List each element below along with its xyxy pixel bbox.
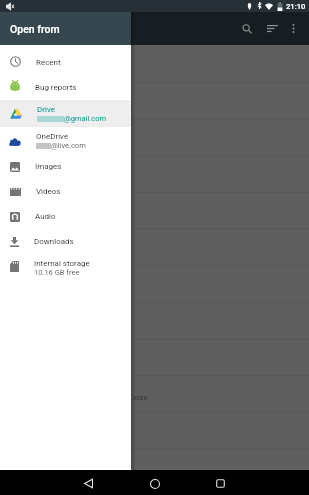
staticText: Images: [35, 162, 62, 171]
button[interactable]: Recent: [0, 50, 131, 75]
button[interactable]: Drive: [0, 100, 131, 127]
button[interactable]: Search: [233, 15, 260, 42]
button[interactable]: Back: [68, 470, 108, 495]
staticText: Bug reports: [35, 83, 77, 92]
staticText: Recent: [36, 58, 61, 67]
staticText: OneDrive: [36, 132, 69, 141]
button[interactable]: Videos: [0, 179, 131, 204]
staticText: Videos: [36, 187, 61, 196]
button[interactable]: OneDrive: [0, 127, 131, 154]
staticText: Internal storage: [34, 259, 90, 268]
staticText: Open from: [10, 23, 60, 35]
button[interactable]: Images: [0, 154, 131, 179]
staticText: Budget.xlsx: [106, 393, 148, 402]
button[interactable]: More options: [280, 15, 307, 42]
staticText: Downloads: [34, 237, 74, 246]
button[interactable]: Downloads: [0, 229, 131, 254]
staticText: Audio: [35, 212, 56, 221]
button[interactable]: Bug reports: [0, 75, 131, 100]
staticText: 10.16 GB free: [34, 268, 80, 277]
button[interactable]: Sort: [259, 15, 286, 42]
staticText: @gmail.com: [64, 114, 107, 123]
staticText: 21:10: [286, 2, 306, 11]
staticText: Drive: [37, 105, 55, 114]
button[interactable]: Audio: [0, 204, 131, 229]
button[interactable]: Recents: [200, 470, 240, 495]
button[interactable]: Home: [135, 470, 175, 495]
button[interactable]: Internal storage: [0, 254, 131, 281]
staticText: @live.com: [51, 141, 86, 150]
